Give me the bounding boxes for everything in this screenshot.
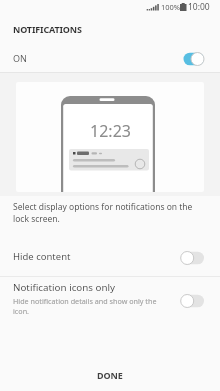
- staticText: Select display options for notifications…: [13, 201, 193, 225]
- staticText: ON: [13, 52, 27, 64]
- button[interactable]: [0, 40, 220, 72]
- button[interactable]: [0, 276, 220, 321]
- staticText: 12:23: [90, 120, 131, 142]
- staticText: Hide content: [13, 250, 71, 263]
- button[interactable]: [180, 292, 206, 310]
- staticText: 10:00: [188, 1, 210, 13]
- button[interactable]: DONE: [70, 362, 150, 388]
- staticText: Notification icons only: [13, 281, 116, 294]
- button[interactable]: [180, 249, 206, 267]
- staticText: NOTIFICATIONS: [13, 23, 82, 35]
- staticText: DONE: [97, 369, 123, 381]
- button[interactable]: [180, 50, 206, 68]
- staticText: Hide notification details and show only …: [13, 296, 157, 316]
- staticText: 100%: [161, 2, 181, 12]
- button[interactable]: [0, 241, 220, 276]
